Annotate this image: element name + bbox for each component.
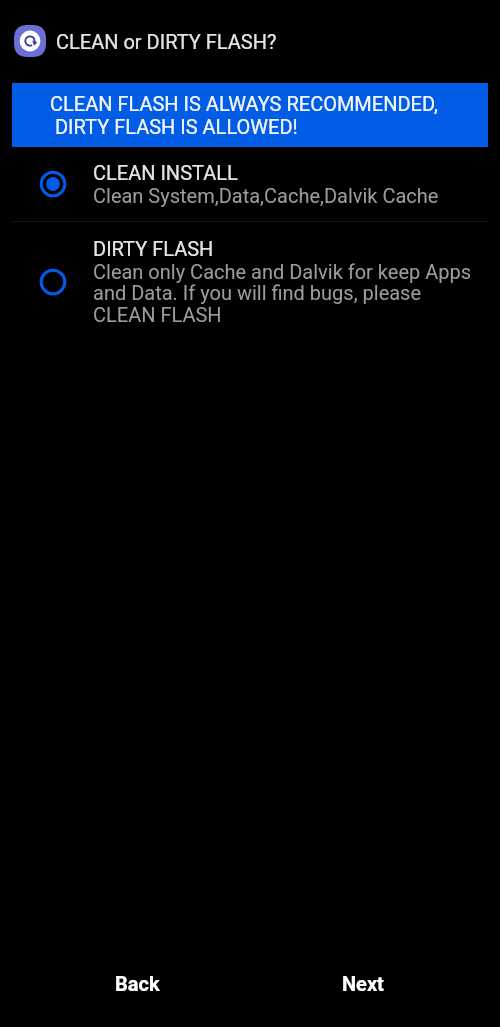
staticText: CLEAN or DIRTY FLASH? bbox=[56, 30, 277, 53]
staticText: Next bbox=[342, 972, 384, 995]
staticText: Clean only Cache and Dalvik for keep App… bbox=[93, 260, 488, 327]
button[interactable]: Back bbox=[25, 947, 250, 1020]
staticText: DIRTY FLASH bbox=[93, 237, 214, 260]
staticText: Back bbox=[115, 972, 160, 995]
staticText: CLEAN FLASH IS ALWAYS RECOMMENDED, DIRTY… bbox=[50, 92, 439, 138]
staticText: Clean System,Data,Cache,Dalvik Cache bbox=[93, 184, 439, 207]
button[interactable]: DIRTY FLASH bbox=[0, 222, 500, 341]
other: App icon bbox=[14, 25, 46, 57]
staticText: CLEAN INSTALL bbox=[93, 161, 238, 184]
button[interactable]: Next bbox=[250, 947, 475, 1020]
button[interactable]: CLEAN INSTALL bbox=[0, 147, 500, 221]
